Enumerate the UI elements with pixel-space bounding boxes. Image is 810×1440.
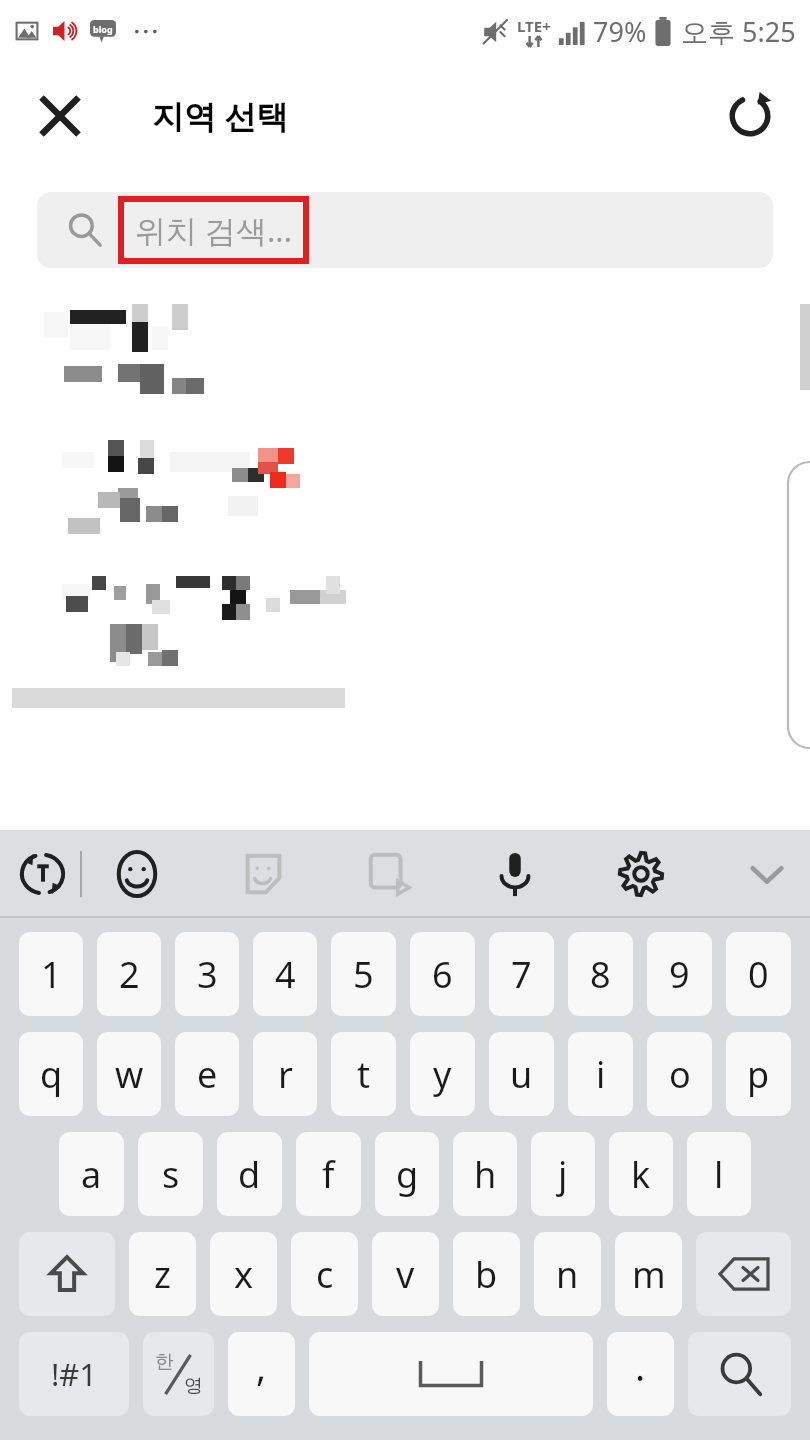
button[interactable]: f (296, 1132, 361, 1216)
button[interactable]: x (210, 1232, 277, 1316)
staticText: e (197, 1050, 218, 1099)
button[interactable]: g (375, 1132, 439, 1216)
staticText: 위치 검색... (135, 209, 292, 251)
staticText: v (396, 1250, 415, 1299)
button[interactable]: 7 (489, 932, 554, 1016)
button[interactable]: j (531, 1132, 595, 1216)
button[interactable]: Emoji (104, 841, 170, 907)
button[interactable]: s (138, 1132, 203, 1216)
button[interactable]: !#1 (19, 1332, 129, 1416)
button[interactable]: Space (309, 1332, 593, 1416)
staticText: . (635, 1340, 646, 1392)
button[interactable]: t (331, 1032, 396, 1116)
button[interactable]: 2 (97, 932, 161, 1016)
button[interactable]: i (568, 1032, 633, 1116)
staticText: LTE+ (517, 16, 551, 36)
button[interactable]: Search (688, 1332, 791, 1416)
staticText: w (115, 1050, 144, 1099)
button[interactable]: l (687, 1132, 751, 1216)
button[interactable]: e (175, 1032, 239, 1116)
button[interactable]: n (534, 1232, 601, 1316)
button[interactable]: z (129, 1232, 196, 1316)
button[interactable]: 6 (410, 932, 475, 1016)
staticText: t (357, 1050, 370, 1099)
staticText: blog (93, 23, 113, 35)
button[interactable]: q (19, 1032, 83, 1116)
staticText: l (714, 1150, 724, 1199)
staticText: f (322, 1150, 335, 1199)
button[interactable]: y (410, 1032, 475, 1116)
staticText: n (556, 1250, 579, 1299)
button[interactable]: 3 (175, 932, 239, 1016)
staticText: 5 (353, 950, 374, 999)
button[interactable]: Refresh (712, 78, 788, 154)
button[interactable]: Translate (10, 841, 76, 907)
staticText: 8 (590, 950, 611, 999)
staticText: q (40, 1050, 63, 1099)
button[interactable]: Sticker (230, 841, 296, 907)
button[interactable]: a (59, 1132, 124, 1216)
button[interactable]: 0 (726, 932, 791, 1016)
button[interactable]: 4 (253, 932, 317, 1016)
button[interactable]: Close (22, 78, 98, 154)
staticText: k (631, 1150, 651, 1199)
staticText: 7 (511, 950, 532, 999)
staticText: 9 (669, 950, 690, 999)
staticText: !#1 (51, 1353, 98, 1395)
staticText: 한 (155, 1350, 174, 1374)
staticText: , (256, 1340, 267, 1392)
button[interactable]: 위치 검색... (37, 192, 773, 268)
button[interactable]: r (253, 1032, 317, 1116)
button[interactable]: Shift (19, 1232, 115, 1316)
button[interactable]: 8 (568, 932, 633, 1016)
staticText: i (596, 1050, 606, 1099)
button[interactable]: c (291, 1232, 358, 1316)
staticText: m (632, 1250, 666, 1299)
button[interactable]: Hide keyboard (734, 841, 800, 907)
staticText: c (316, 1250, 334, 1299)
button[interactable]: k (609, 1132, 673, 1216)
staticText: r (278, 1050, 293, 1099)
staticText: y (433, 1050, 452, 1099)
button[interactable]: m (615, 1232, 682, 1316)
staticText: b (475, 1250, 498, 1299)
button[interactable]: b (453, 1232, 520, 1316)
staticText: 3 (197, 950, 218, 999)
staticText: 오후 5:25 (681, 13, 796, 50)
staticText: u (510, 1050, 533, 1099)
button[interactable]: GIF (356, 841, 422, 907)
staticText: 1 (41, 950, 62, 999)
staticText: 79% (593, 13, 647, 50)
button[interactable] (40, 296, 350, 408)
staticText: 2 (119, 950, 140, 999)
staticText: g (396, 1150, 419, 1199)
staticText: d (238, 1150, 261, 1199)
button[interactable] (40, 556, 350, 668)
button[interactable] (40, 426, 350, 538)
button[interactable]: 5 (331, 932, 396, 1016)
button[interactable]: u (489, 1032, 554, 1116)
staticText: 0 (748, 950, 769, 999)
button[interactable]: o (647, 1032, 712, 1116)
staticText: j (558, 1150, 568, 1199)
staticText: 4 (275, 950, 296, 999)
button[interactable]: , (228, 1332, 295, 1416)
button[interactable]: w (97, 1032, 161, 1116)
button[interactable]: 9 (647, 932, 712, 1016)
button[interactable]: Voice input (482, 841, 548, 907)
staticText: 영 (184, 1374, 203, 1398)
button[interactable]: . (607, 1332, 674, 1416)
button[interactable]: d (217, 1132, 282, 1216)
button[interactable]: v (372, 1232, 439, 1316)
button[interactable]: h (453, 1132, 517, 1216)
button[interactable]: Settings (608, 841, 674, 907)
button[interactable]: 1 (19, 932, 83, 1016)
button[interactable]: Backspace (696, 1232, 791, 1316)
staticText: x (234, 1250, 254, 1299)
staticText: z (154, 1250, 171, 1299)
staticText: s (162, 1150, 180, 1199)
button[interactable]: Korean English toggle (143, 1332, 214, 1416)
staticText: 6 (432, 950, 453, 999)
button[interactable]: p (726, 1032, 791, 1116)
staticText: 지역 선택 (152, 94, 289, 138)
